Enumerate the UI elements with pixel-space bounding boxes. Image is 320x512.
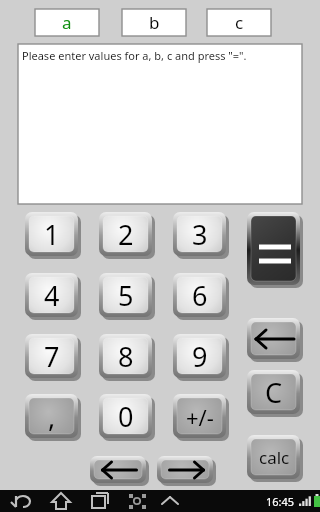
staticText: Please enter values for a, b, c and pres… <box>22 48 247 63</box>
staticText: 6 <box>192 277 208 314</box>
staticText: calc <box>259 446 290 469</box>
button[interactable]: calc <box>247 435 303 482</box>
button[interactable]: Please enter values for a, b, c and pres… <box>18 44 302 204</box>
button[interactable]: a <box>35 9 99 36</box>
button[interactable]: 1 <box>25 212 81 259</box>
button[interactable]: +/- <box>173 394 229 441</box>
button[interactable]: Equals <box>247 212 303 288</box>
staticText: 3 <box>192 216 208 253</box>
button[interactable]: 9 <box>173 334 229 381</box>
button[interactable]: , <box>25 394 81 441</box>
button[interactable]: Screenshot <box>119 490 155 512</box>
button[interactable]: 4 <box>25 273 81 320</box>
staticText: C <box>265 374 283 411</box>
staticText: 1 <box>44 216 60 253</box>
staticText: 7 <box>44 338 60 375</box>
button[interactable]: Move right <box>157 456 216 486</box>
button[interactable]: Backspace <box>247 318 303 362</box>
staticText: a <box>62 11 72 34</box>
button[interactable]: C <box>247 370 303 417</box>
staticText: 2 <box>118 216 134 253</box>
button[interactable]: Home <box>43 490 79 512</box>
button[interactable]: 3 <box>173 212 229 259</box>
staticText: +/- <box>186 402 214 432</box>
button[interactable]: Move left <box>90 456 149 486</box>
button[interactable]: 8 <box>99 334 155 381</box>
button[interactable]: Recent apps <box>81 490 117 512</box>
staticText: c <box>235 11 244 34</box>
staticText: 16:45 <box>266 494 295 509</box>
button[interactable]: Show notifications <box>152 490 188 512</box>
button[interactable]: b <box>122 9 186 36</box>
staticText: b <box>149 11 160 34</box>
staticText: 9 <box>192 338 208 375</box>
button[interactable]: 2 <box>99 212 155 259</box>
button[interactable]: 0 <box>99 394 155 441</box>
staticText: 0 <box>118 398 134 435</box>
staticText: 8 <box>118 338 134 375</box>
button[interactable]: c <box>207 9 271 36</box>
button[interactable]: 5 <box>99 273 155 320</box>
button[interactable]: 6 <box>173 273 229 320</box>
button[interactable]: Back <box>5 490 41 512</box>
staticText: , <box>48 398 56 435</box>
button[interactable]: 7 <box>25 334 81 381</box>
staticText: 5 <box>118 277 134 314</box>
staticText: 4 <box>44 277 60 314</box>
